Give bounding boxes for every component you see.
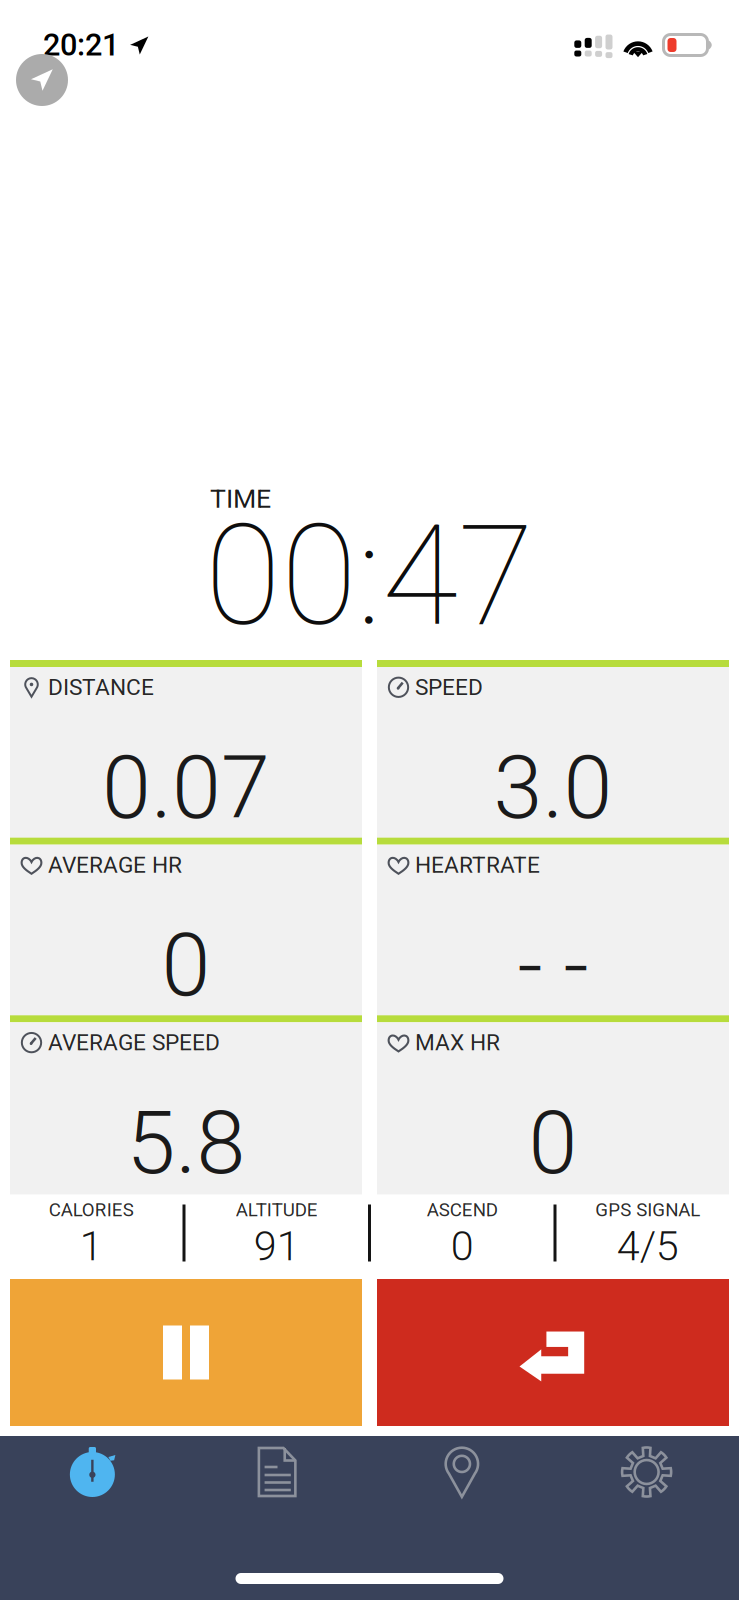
button[interactable]: Settings	[554, 1436, 739, 1508]
staticText: 0	[451, 1222, 474, 1270]
staticText: AVERAGE HR	[48, 852, 182, 878]
staticText: DISTANCE	[48, 674, 154, 701]
staticText: 20:21	[43, 27, 119, 63]
staticText: 1	[80, 1222, 103, 1270]
staticText: 0	[161, 914, 210, 1017]
staticText: 5.8	[126, 1091, 245, 1194]
staticText: MAX HR	[415, 1029, 500, 1056]
staticText: 0.07	[102, 736, 270, 839]
button[interactable]: Pause	[10, 1279, 362, 1426]
staticText: HEARTRATE	[415, 852, 540, 878]
staticText: 91	[254, 1222, 300, 1270]
staticText: ASCEND	[427, 1199, 498, 1221]
button[interactable]: Stopwatch	[0, 1436, 185, 1508]
staticText: ALTITUDE	[236, 1199, 318, 1221]
staticText: 4/5	[617, 1222, 679, 1270]
staticText: TIME	[210, 483, 271, 514]
button[interactable]: Log	[185, 1436, 370, 1508]
staticText: AVERAGE SPEED	[48, 1029, 220, 1056]
staticText: 0	[528, 1091, 577, 1194]
staticText: 3.0	[493, 736, 612, 839]
staticText: CALORIES	[49, 1199, 134, 1221]
staticText: - -	[517, 914, 588, 1017]
staticText: 00:47	[205, 495, 534, 657]
staticText: GPS SIGNAL	[595, 1199, 700, 1221]
staticText: SPEED	[415, 674, 483, 701]
button[interactable]: Stop	[377, 1279, 729, 1426]
button[interactable]: Map	[369, 1436, 554, 1508]
